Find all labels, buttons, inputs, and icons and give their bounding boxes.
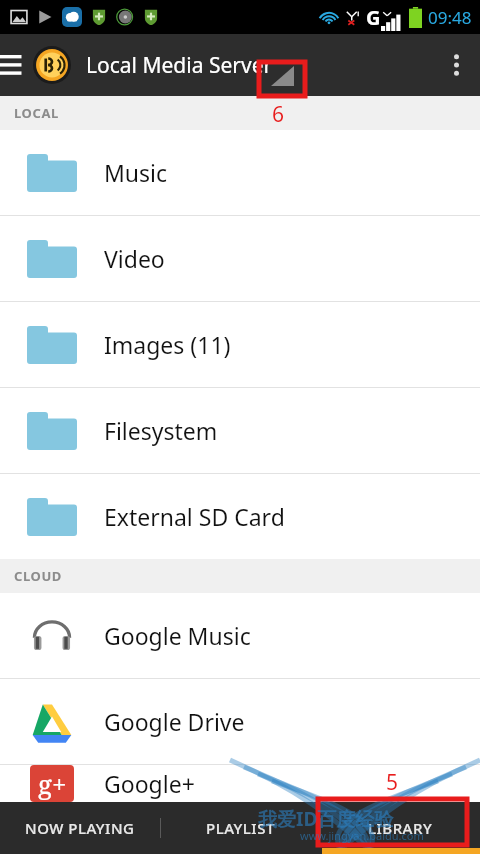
staticText: Images (11) [104,329,231,360]
button[interactable]: NOW PLAYING [0,802,160,854]
staticText: Google Drive [104,706,245,737]
button[interactable]: LIBRARY [321,802,480,854]
staticText: 09:48 [428,6,472,29]
button[interactable]: Google Music [0,593,480,678]
button[interactable]: g+ [0,765,480,802]
staticText: Filesystem [104,415,218,446]
button[interactable]: External SD Card [0,474,480,559]
staticText: 我爱ID百度经验 [258,806,394,832]
button[interactable]: Google Drive [0,679,480,764]
button[interactable]: Music [0,130,480,215]
button[interactable]: BubbleUPnP app icon [30,43,74,87]
button[interactable]: Open navigation drawer [0,34,30,96]
staticText: PLAYLIST [206,818,275,838]
staticText: Video [104,243,165,274]
staticText: Local Media Server [86,51,273,80]
button[interactable]: PLAYLIST [161,802,320,854]
button[interactable]: More options [432,34,480,96]
staticText: g+ [38,766,67,801]
staticText: 5 [386,768,399,797]
staticText: 6 [272,100,285,129]
staticText: LOCAL [14,104,59,122]
staticText: External SD Card [104,501,285,532]
staticText: www.jingyan.baidu.com [300,828,424,843]
staticText: Google+ [104,768,195,799]
staticText: CLOUD [14,567,62,585]
staticText: LIBRARY [368,818,433,838]
staticText: NOW PLAYING [25,818,135,838]
button[interactable]: Filesystem [0,388,480,473]
button[interactable]: Video [0,216,480,301]
staticText: Music [104,157,168,188]
staticText: G [366,4,381,31]
button[interactable]: Images (11) [0,302,480,387]
staticText: Google Music [104,620,251,651]
